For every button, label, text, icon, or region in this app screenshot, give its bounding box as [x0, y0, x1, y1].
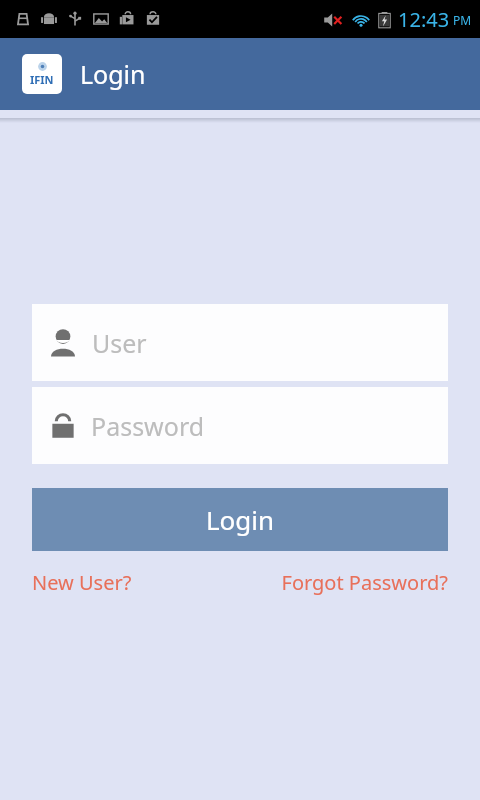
staticText: Forgot Password?	[281, 569, 448, 596]
staticText: User	[92, 326, 147, 360]
button[interactable]: User	[32, 304, 448, 381]
staticText: PM	[453, 12, 472, 28]
staticText: IFIN	[30, 72, 54, 87]
button[interactable]: IFIN logo	[22, 54, 62, 94]
button[interactable]: Password	[32, 387, 448, 464]
staticText: Login	[80, 57, 146, 91]
button[interactable]: Login	[32, 488, 448, 551]
staticText: Login	[206, 502, 275, 537]
button[interactable]: Forgot Password?	[281, 565, 448, 600]
staticText: New User?	[32, 569, 132, 596]
staticText: Password	[91, 409, 205, 443]
staticText: 12:43	[398, 6, 450, 33]
button[interactable]: New User?	[32, 565, 132, 600]
